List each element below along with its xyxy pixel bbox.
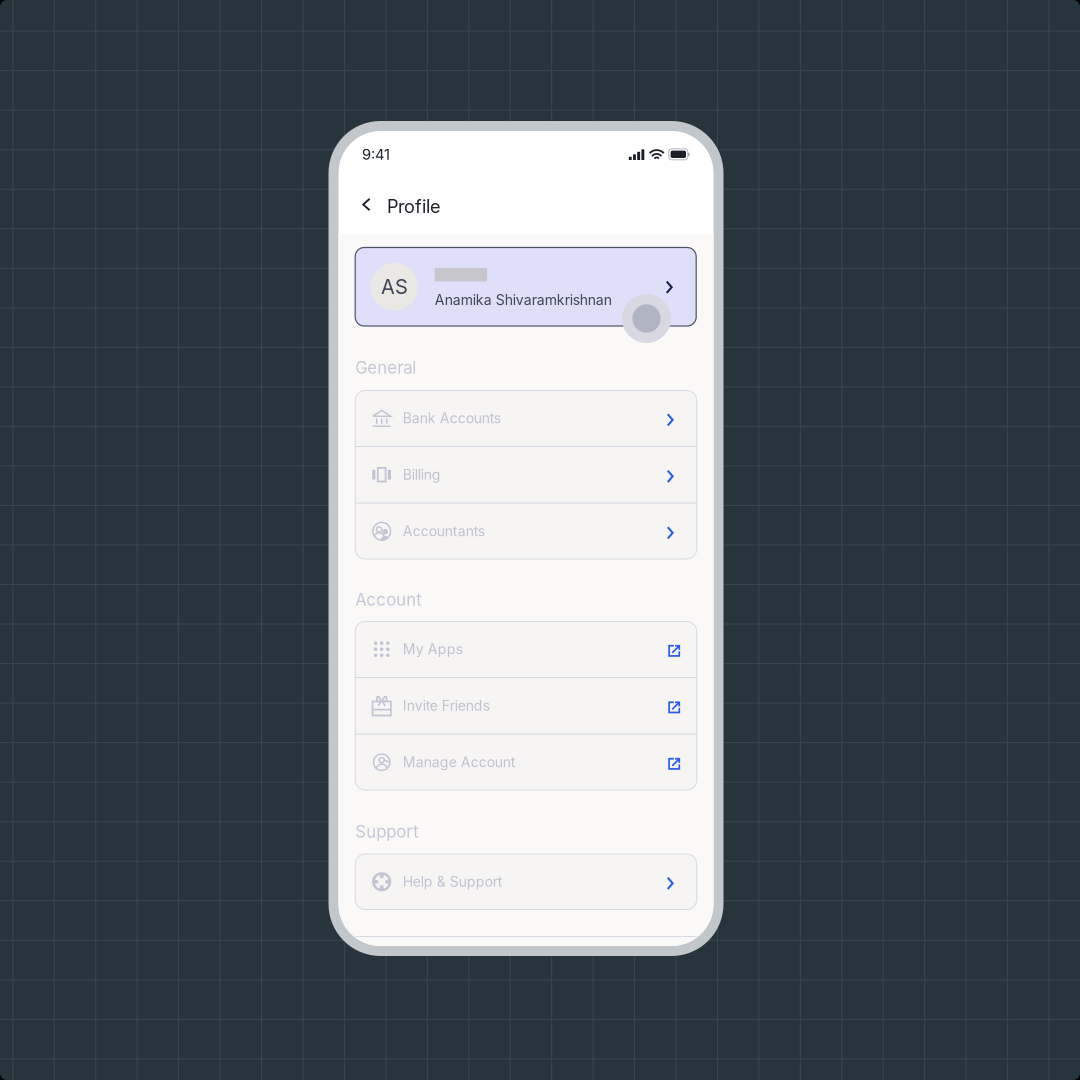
staticText: AS: [381, 275, 408, 299]
button[interactable]: AS: [355, 247, 696, 326]
staticText: Manage Account: [403, 754, 516, 771]
staticText: Anamika Shivaramkrishnan: [435, 291, 612, 308]
staticText: 9:41: [362, 145, 390, 163]
staticText: Account: [355, 589, 421, 610]
button[interactable]: Bank Accounts: [355, 390, 697, 446]
staticText: Help & Support: [403, 873, 503, 890]
staticText: My Apps: [403, 641, 463, 658]
button[interactable]: Accountants: [355, 503, 697, 559]
button[interactable]: My Apps: [355, 621, 697, 677]
staticText: Accountants: [403, 523, 485, 540]
button[interactable]: Help & Support: [355, 854, 697, 909]
button[interactable]: Manage Account: [355, 734, 697, 790]
button[interactable]: Invite Friends: [355, 678, 697, 733]
staticText: Profile: [387, 195, 440, 217]
staticText: Billing: [403, 466, 441, 483]
staticText: Bank Accounts: [403, 410, 501, 427]
button[interactable]: Billing: [355, 447, 697, 502]
staticText: Support: [355, 821, 418, 842]
staticText: Invite Friends: [403, 697, 490, 714]
button[interactable]: Back: [352, 186, 380, 222]
staticText: General: [355, 357, 416, 378]
